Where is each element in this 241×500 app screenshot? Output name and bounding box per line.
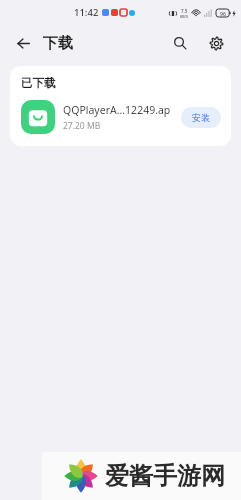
staticText: 11:42 — [74, 6, 99, 19]
staticText: 下载 — [43, 34, 73, 53]
staticText: 7.5 — [181, 8, 188, 14]
button[interactable]: Back — [10, 30, 36, 56]
staticText: 96 — [220, 10, 226, 17]
staticText: QQPlayerA...12249.apk — [63, 103, 175, 117]
staticText: KB/S — [180, 14, 188, 18]
staticText: 爱酱手游网 — [105, 461, 225, 491]
staticText: 安装 — [192, 112, 210, 123]
staticText: 已下载 — [21, 76, 56, 90]
button[interactable]: Settings — [203, 30, 229, 56]
staticText: 27.20 MB — [63, 120, 101, 132]
button[interactable]: Search — [167, 30, 193, 56]
button[interactable]: QQPlayerA...12249.apk — [21, 100, 221, 134]
button[interactable]: 安装 — [181, 107, 221, 128]
